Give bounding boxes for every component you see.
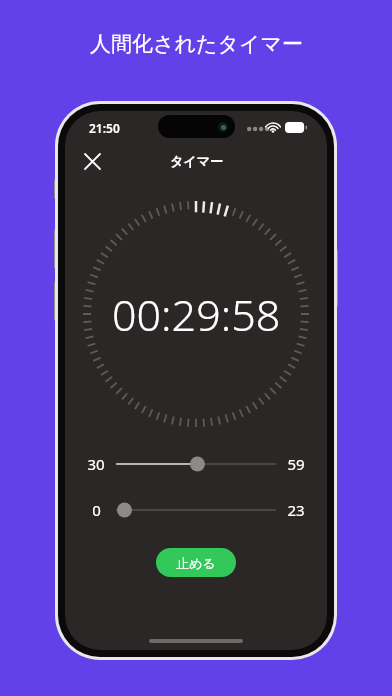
button[interactable]: Slider 30 (117, 451, 275, 477)
staticText: 0 (92, 500, 101, 520)
staticText: 人間化されたタイマー (90, 31, 303, 57)
staticText: 23 (287, 500, 305, 520)
button[interactable]: Close (75, 144, 109, 178)
button[interactable]: Slider 0 (117, 497, 275, 523)
staticText: 止める (176, 555, 216, 571)
staticText: 30 (87, 454, 105, 474)
staticText: タイマー (170, 153, 223, 169)
staticText: 21:50 (89, 120, 120, 136)
button[interactable]: 止める (156, 548, 236, 577)
staticText: 00:29:58 (112, 285, 281, 344)
staticText: 59 (287, 454, 305, 474)
